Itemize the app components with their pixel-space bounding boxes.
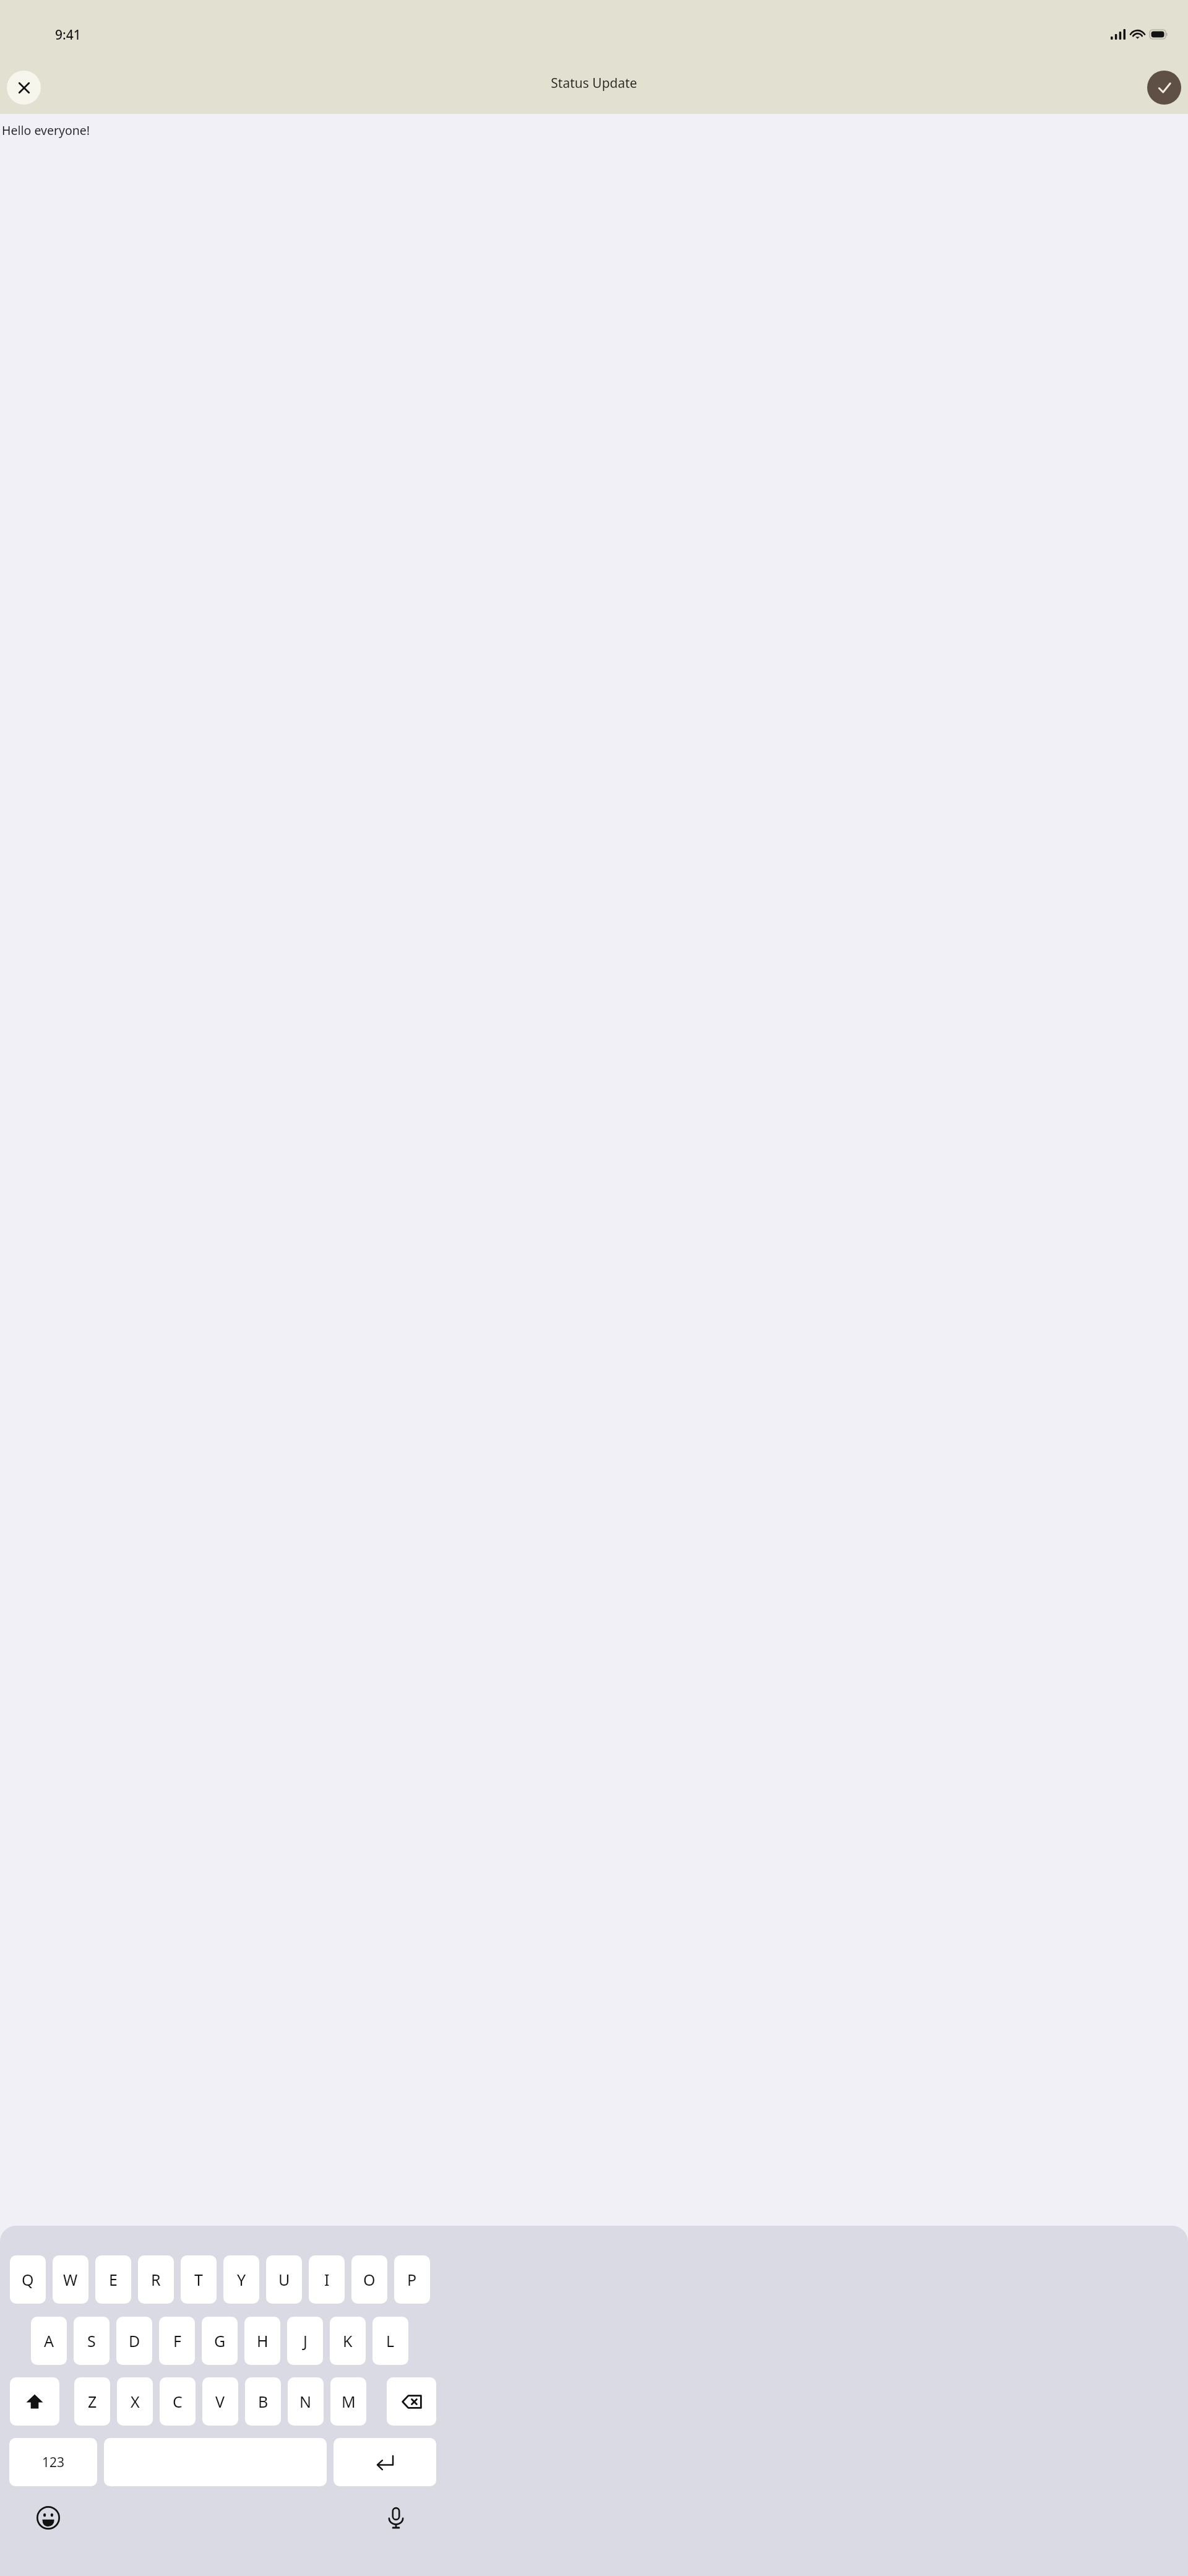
staticText: R — [151, 2269, 161, 2290]
staticText: P — [407, 2269, 417, 2290]
button[interactable]: Backspace — [387, 2377, 436, 2426]
button[interactable]: M — [330, 2377, 366, 2426]
button[interactable]: Close — [7, 71, 41, 105]
button[interactable]: B — [245, 2377, 281, 2426]
button[interactable]: D — [116, 2317, 152, 2365]
staticText: S — [87, 2330, 96, 2351]
button[interactable]: G — [202, 2317, 238, 2365]
button[interactable]: T — [181, 2255, 217, 2304]
button[interactable]: X — [117, 2377, 153, 2426]
button[interactable]: Enter — [334, 2438, 436, 2486]
staticText: X — [131, 2391, 140, 2412]
button[interactable]: V — [202, 2377, 238, 2426]
staticText: Status Update — [551, 74, 637, 92]
button[interactable]: Voice input — [379, 2500, 413, 2535]
staticText: A — [44, 2330, 54, 2351]
button[interactable]: Y — [223, 2255, 259, 2304]
button[interactable]: K — [330, 2317, 366, 2365]
button[interactable]: J — [287, 2317, 323, 2365]
button[interactable]: 123 — [9, 2438, 97, 2486]
staticText: H — [257, 2330, 269, 2351]
staticText: L — [386, 2330, 395, 2351]
staticText: Hello everyone! — [2, 122, 90, 139]
button[interactable]: R — [138, 2255, 174, 2304]
staticText: J — [303, 2330, 308, 2351]
staticText: 123 — [42, 2453, 65, 2471]
button[interactable]: Hello everyone! — [0, 122, 1188, 139]
staticText: I — [324, 2269, 330, 2290]
staticText: K — [343, 2330, 353, 2351]
button[interactable]: Q — [10, 2255, 46, 2304]
button[interactable]: W — [53, 2255, 88, 2304]
staticText: D — [129, 2330, 140, 2351]
staticText: B — [258, 2391, 269, 2412]
button[interactable]: F — [159, 2317, 195, 2365]
button[interactable]: A — [31, 2317, 67, 2365]
staticText: O — [363, 2269, 376, 2290]
staticText: Q — [22, 2269, 34, 2290]
button[interactable]: E — [95, 2255, 131, 2304]
button[interactable]: U — [266, 2255, 302, 2304]
button[interactable]: H — [244, 2317, 280, 2365]
staticText: U — [278, 2269, 290, 2290]
button[interactable]: Shift — [10, 2377, 59, 2426]
button[interactable]: P — [394, 2255, 430, 2304]
button[interactable]: I — [309, 2255, 345, 2304]
staticText: Y — [237, 2269, 246, 2290]
staticText: M — [342, 2391, 356, 2412]
staticText: F — [173, 2330, 181, 2351]
staticText: C — [173, 2391, 183, 2412]
staticText: 9:41 — [55, 26, 81, 44]
staticText: T — [194, 2269, 203, 2290]
staticText: G — [214, 2330, 226, 2351]
button[interactable]: Emoji — [31, 2500, 66, 2535]
staticText: E — [109, 2269, 118, 2290]
staticText: N — [299, 2391, 312, 2412]
button[interactable]: Z — [74, 2377, 110, 2426]
staticText: Z — [88, 2391, 97, 2412]
staticText: V — [215, 2391, 225, 2412]
staticText: W — [63, 2269, 78, 2290]
button[interactable]: L — [372, 2317, 408, 2365]
button[interactable]: C — [160, 2377, 196, 2426]
button[interactable]: O — [351, 2255, 387, 2304]
button[interactable]: N — [288, 2377, 324, 2426]
button[interactable]: Confirm — [1147, 71, 1181, 105]
button[interactable]: S — [74, 2317, 110, 2365]
